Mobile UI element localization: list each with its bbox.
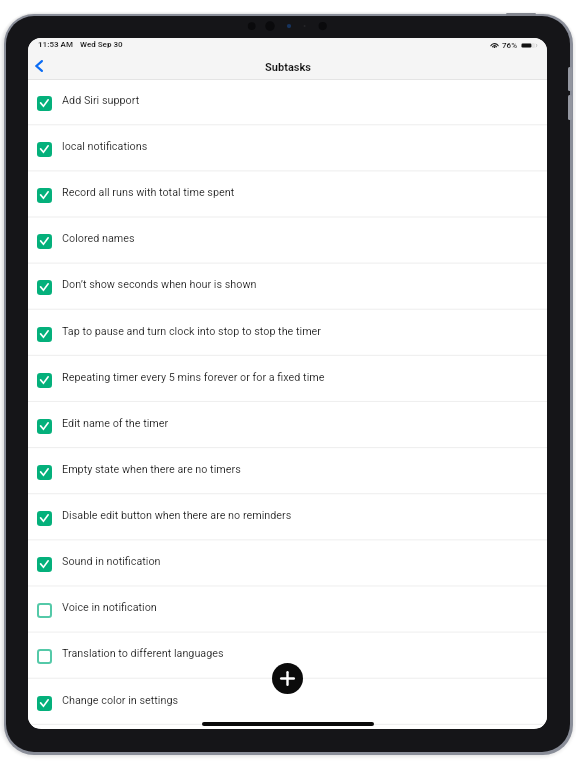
staticText: Record all runs with total time spent bbox=[62, 186, 235, 199]
staticText: Translation to different languages bbox=[62, 647, 224, 660]
staticText: Don’t show seconds when hour is shown bbox=[62, 278, 257, 291]
staticText: Colored names bbox=[62, 232, 135, 245]
button[interactable]: Sound in notification bbox=[28, 540, 547, 586]
button[interactable]: Record all runs with total time spent bbox=[28, 171, 547, 217]
staticText: 76% bbox=[502, 41, 518, 50]
button[interactable]: Don’t show seconds when hour is shown bbox=[28, 263, 547, 309]
button[interactable]: Colored names bbox=[28, 217, 547, 263]
button[interactable]: Add Siri support bbox=[28, 79, 547, 125]
staticText: Tap to pause and turn clock into stop to… bbox=[62, 325, 322, 338]
staticText: 11:53 AM bbox=[38, 40, 73, 49]
staticText: Wed Sep 30 bbox=[80, 40, 123, 49]
staticText: Sound in notification bbox=[62, 555, 161, 568]
staticText: Change color in settings bbox=[62, 694, 179, 707]
staticText: local notifications bbox=[62, 140, 148, 153]
staticText: Edit name of the timer bbox=[62, 417, 169, 430]
button[interactable]: Repeating timer every 5 mins forever or … bbox=[28, 356, 547, 402]
button[interactable]: Edit name of the timer bbox=[28, 402, 547, 448]
button[interactable]: Empty state when there are no timers bbox=[28, 448, 547, 494]
staticText: Repeating timer every 5 mins forever or … bbox=[62, 371, 325, 384]
button[interactable]: Voice in notification bbox=[28, 586, 547, 632]
staticText: Add Siri support bbox=[62, 94, 140, 107]
staticText: Voice in notification bbox=[62, 601, 157, 614]
staticText: Disable edit button when there are no re… bbox=[62, 509, 292, 522]
button[interactable]: Back bbox=[28, 54, 51, 78]
button[interactable]: Add subtask bbox=[272, 663, 303, 694]
button[interactable]: local notifications bbox=[28, 125, 547, 171]
button[interactable]: Tap to pause and turn clock into stop to… bbox=[28, 310, 547, 356]
button[interactable]: Disable edit button when there are no re… bbox=[28, 494, 547, 540]
button[interactable]: Translation to different languages bbox=[28, 632, 547, 678]
staticText: Empty state when there are no timers bbox=[62, 463, 241, 476]
button[interactable]: Change color in settings bbox=[28, 679, 547, 725]
staticText: Subtasks bbox=[265, 61, 311, 74]
